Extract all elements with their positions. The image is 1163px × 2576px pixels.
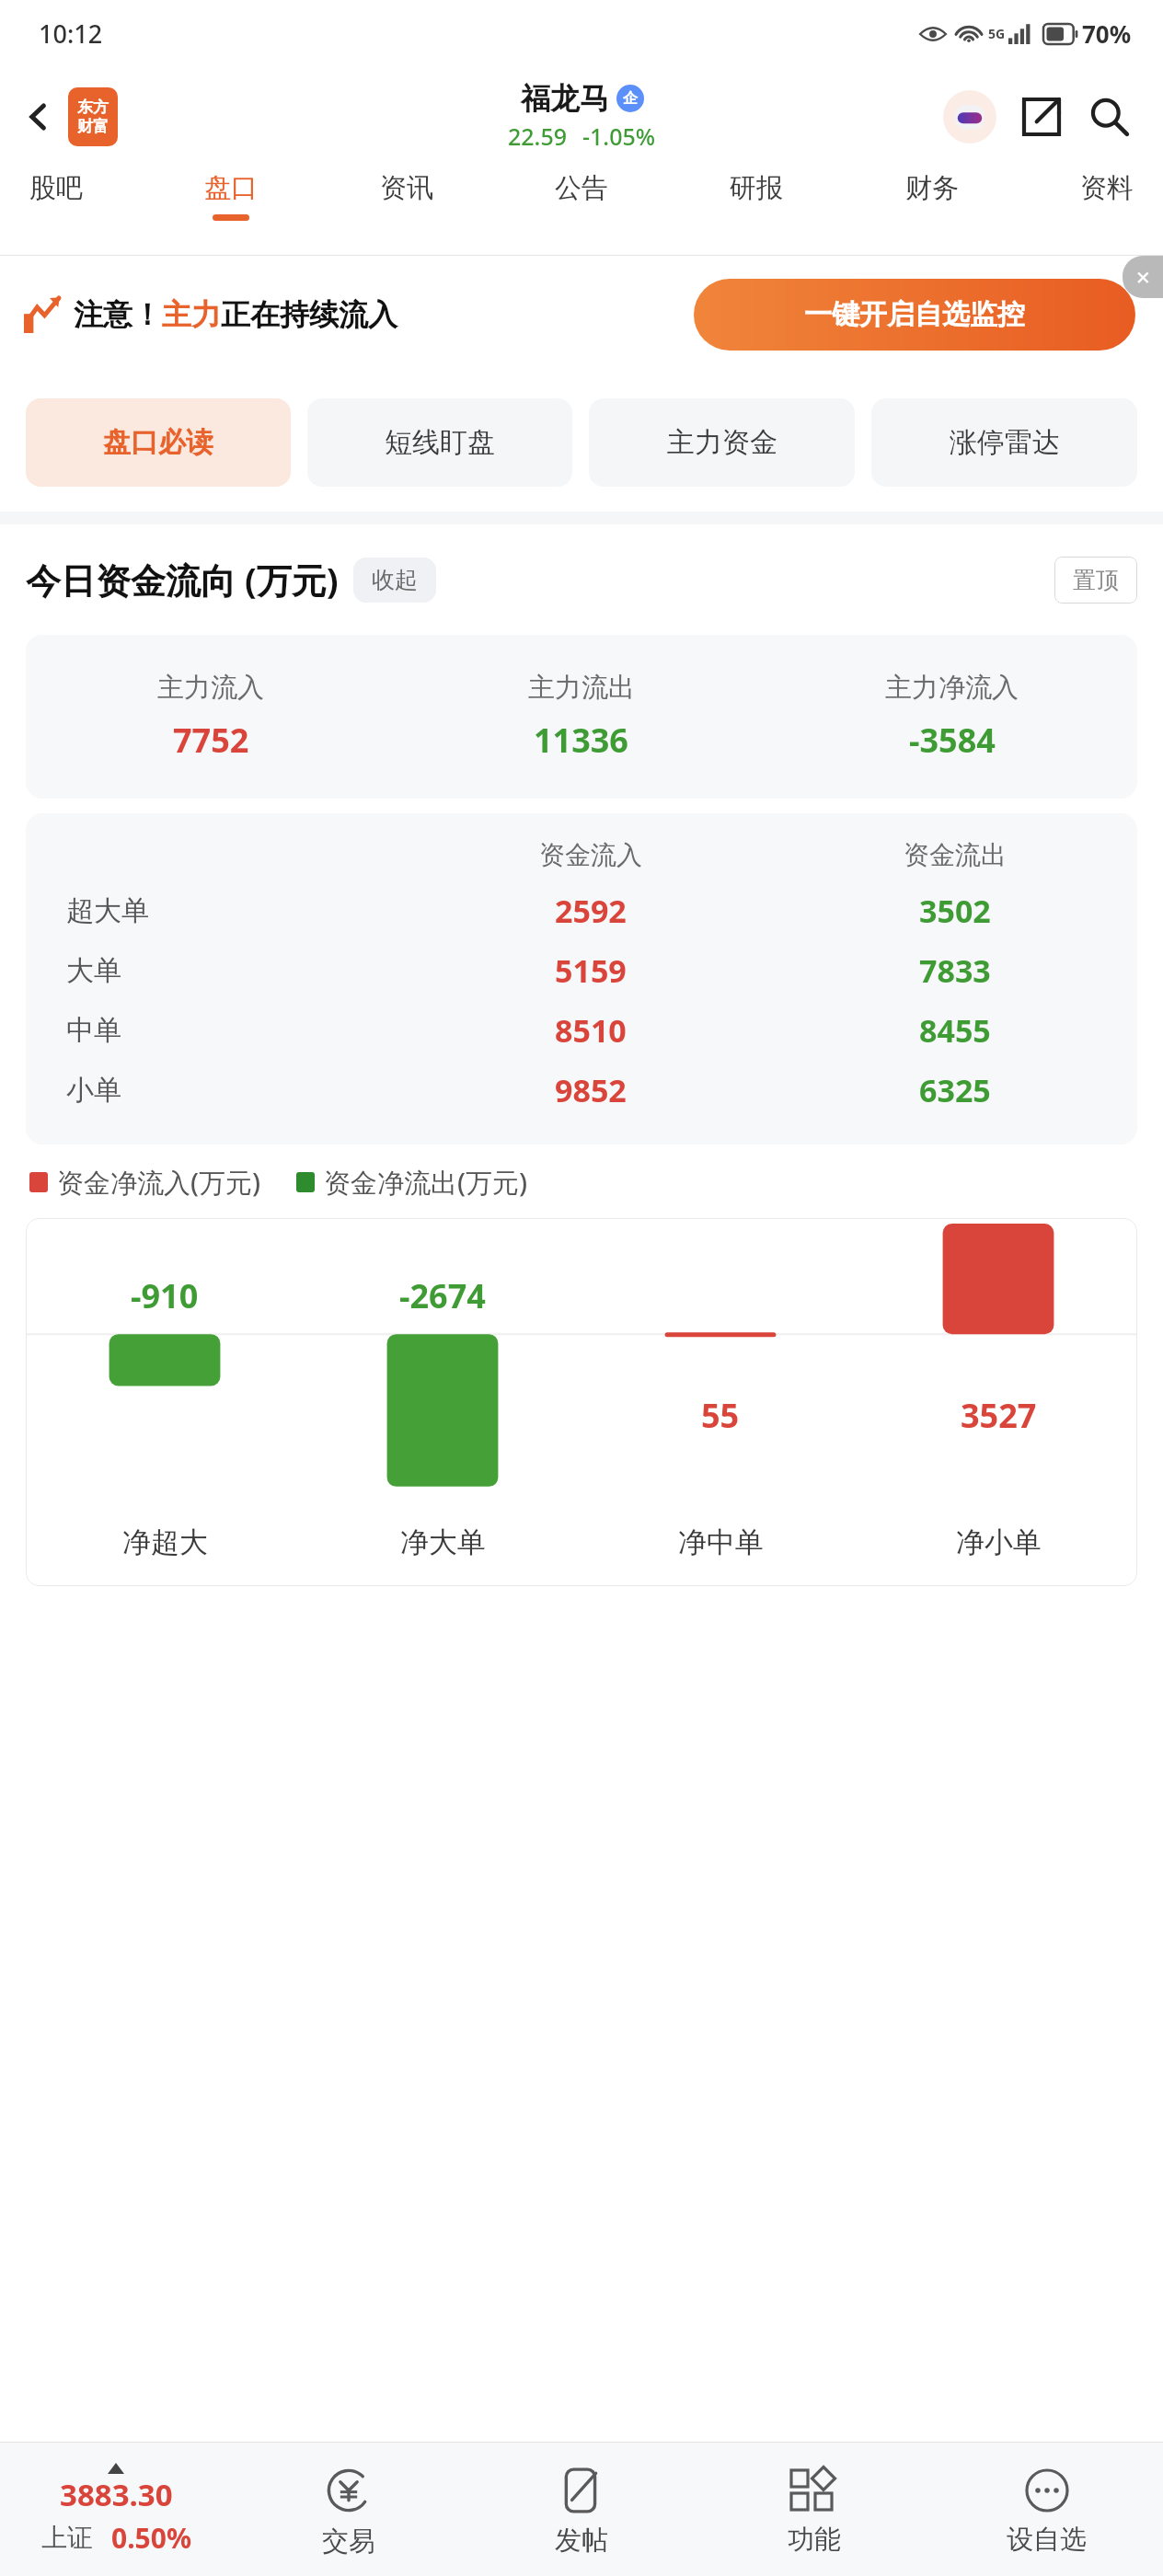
- staticText: 5159: [555, 949, 627, 992]
- staticText: 财务: [905, 171, 959, 205]
- staticText: 55: [701, 1393, 740, 1438]
- staticText: 资讯: [380, 171, 433, 205]
- staticText: 福龙马: [521, 80, 609, 117]
- staticText: -910: [131, 1273, 199, 1318]
- staticText: 资金净流出(万元): [324, 1164, 528, 1201]
- staticText: 发帖: [555, 2524, 608, 2558]
- staticText: 盘口: [204, 171, 258, 205]
- button[interactable]: 公告: [549, 167, 614, 218]
- staticText: 设自选: [1007, 2523, 1087, 2557]
- staticText: 企: [623, 89, 638, 108]
- staticText: 公告: [555, 171, 608, 205]
- staticText: 净小单: [956, 1524, 1042, 1560]
- staticText: 5G: [988, 25, 1006, 42]
- staticText: 一键开启自选监控: [804, 297, 1025, 332]
- staticText: 涨停雷达: [950, 425, 1060, 460]
- staticText: 资料: [1080, 171, 1134, 205]
- staticText: 7752: [173, 718, 249, 763]
- button[interactable]: 盘口必读: [26, 398, 291, 487]
- button[interactable]: Back: [13, 91, 64, 143]
- staticText: 11336: [534, 718, 628, 763]
- staticText: 收起: [372, 566, 418, 594]
- staticText: 主力流入: [157, 671, 264, 705]
- staticText: 财富: [77, 117, 109, 136]
- staticText: 资金流出: [904, 839, 1007, 871]
- staticText: 10:12: [39, 17, 103, 51]
- button[interactable]: 一键开启自选监控: [694, 279, 1135, 351]
- staticText: 0.50%: [111, 2519, 191, 2557]
- staticText: 3527: [961, 1393, 1037, 1438]
- staticText: 7833: [919, 949, 991, 992]
- staticText: 2592: [555, 890, 627, 932]
- button[interactable]: 研报: [724, 167, 789, 218]
- button[interactable]: 资讯: [374, 167, 439, 218]
- staticText: 小单: [66, 1073, 121, 1108]
- staticText: 交易: [322, 2524, 375, 2559]
- button[interactable]: 涨停雷达: [871, 398, 1137, 487]
- staticText: 净中单: [678, 1524, 764, 1560]
- staticText: 功能: [788, 2523, 841, 2557]
- button[interactable]: 股吧: [24, 167, 88, 218]
- button[interactable]: 资料: [1075, 167, 1139, 218]
- button[interactable]: 发帖: [465, 2461, 697, 2558]
- staticText: 22.59: [508, 121, 568, 152]
- staticText: 注意！: [74, 296, 162, 333]
- staticText: 大单: [66, 953, 121, 988]
- button[interactable]: 财务: [900, 167, 964, 218]
- staticText: 3502: [919, 890, 991, 932]
- staticText: 主力: [162, 296, 221, 333]
- staticText: 资金流入: [539, 839, 642, 871]
- button[interactable]: Search: [1080, 87, 1139, 146]
- button[interactable]: -910: [26, 1218, 1137, 1586]
- button[interactable]: 短线盯盘: [307, 398, 572, 487]
- staticText: 3883.30: [60, 2474, 173, 2515]
- button[interactable]: 设自选: [930, 2462, 1163, 2557]
- staticText: 净大单: [400, 1524, 486, 1560]
- staticText: 8455: [919, 1009, 991, 1052]
- button[interactable]: 收起: [353, 558, 436, 603]
- button[interactable]: Close: [1123, 256, 1163, 298]
- staticText: 研报: [730, 171, 783, 205]
- staticText: 置顶: [1073, 566, 1119, 594]
- staticText: 70%: [1082, 17, 1132, 50]
- button[interactable]: 主力资金: [589, 398, 855, 487]
- staticText: 中单: [66, 1013, 121, 1048]
- staticText: -2674: [399, 1273, 486, 1318]
- staticText: 正在持续流入: [221, 296, 397, 333]
- staticText: -3584: [909, 718, 996, 763]
- button[interactable]: 主力流入: [26, 635, 1137, 799]
- staticText: 资金净流入(万元): [57, 1164, 261, 1201]
- staticText: 今日资金流向 (万元): [26, 556, 339, 604]
- staticText: 股吧: [29, 171, 83, 205]
- button[interactable]: Share: [1012, 87, 1071, 146]
- staticText: ✕: [1135, 267, 1151, 288]
- staticText: 8510: [555, 1009, 627, 1052]
- staticText: 东方: [77, 98, 109, 117]
- staticText: 上证: [41, 2522, 93, 2554]
- button[interactable]: 置顶: [1054, 557, 1137, 604]
- staticText: 主力资金: [667, 425, 777, 460]
- staticText: 主力净流入: [885, 671, 1019, 705]
- button[interactable]: 功能: [697, 2462, 930, 2557]
- button[interactable]: 3883.30: [0, 2463, 232, 2557]
- staticText: 超大单: [66, 893, 149, 928]
- staticText: 6325: [919, 1069, 991, 1111]
- button[interactable]: 资金流入: [26, 813, 1137, 1144]
- staticText: 主力流出: [528, 671, 635, 705]
- staticText: 盘口必读: [103, 425, 213, 460]
- staticText: -1.05%: [582, 121, 656, 152]
- button[interactable]: 盘口: [199, 167, 263, 224]
- button[interactable]: 交易: [232, 2460, 465, 2559]
- button[interactable]: AI assistant: [940, 87, 999, 146]
- staticText: 短线盯盘: [385, 425, 495, 460]
- staticText: 净超大: [122, 1524, 208, 1560]
- button[interactable]: 东方财富: [68, 87, 118, 146]
- staticText: 9852: [555, 1069, 627, 1111]
